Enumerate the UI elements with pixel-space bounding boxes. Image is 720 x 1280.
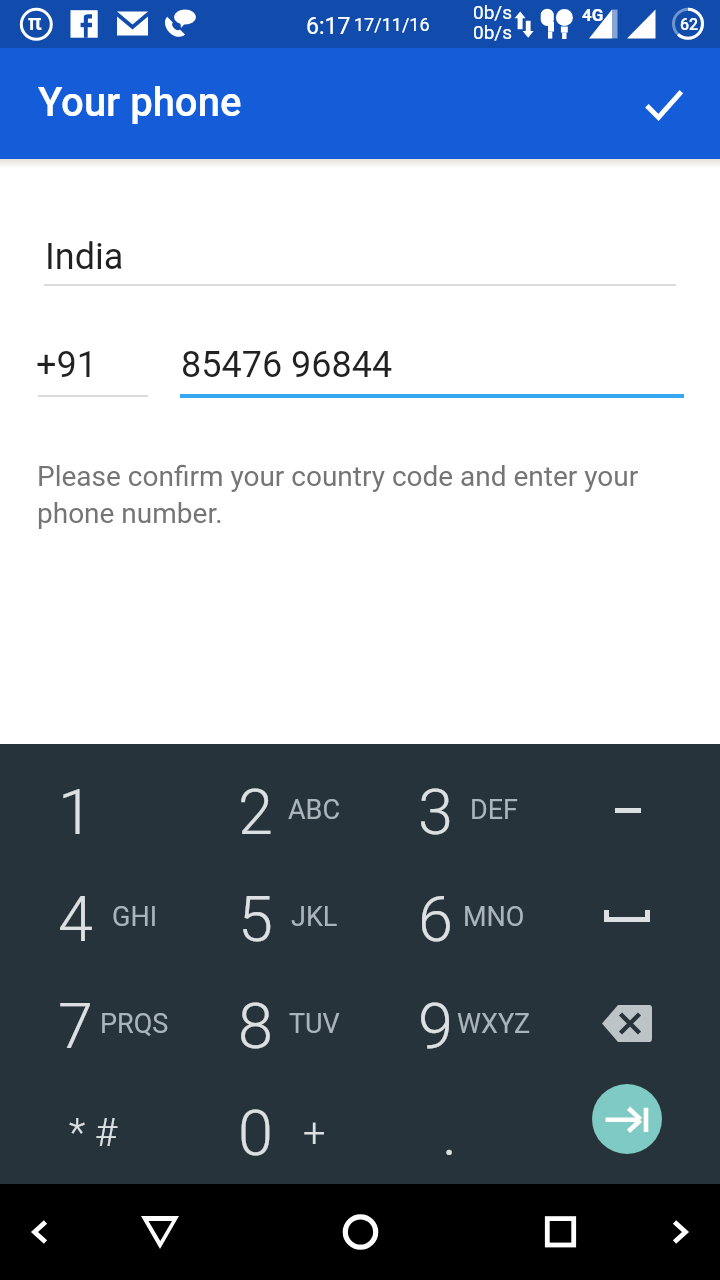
staticText: 85476 96844 xyxy=(181,344,393,386)
staticText: 4G xyxy=(582,5,604,25)
button[interactable]: Backspace xyxy=(540,973,720,1080)
button[interactable]: 8 xyxy=(180,973,360,1080)
staticText: +91 xyxy=(36,344,97,386)
button[interactable]: Space xyxy=(540,866,720,973)
staticText: 1 xyxy=(58,776,93,850)
button[interactable]: 6 xyxy=(360,866,540,973)
button[interactable]: Previous xyxy=(0,1184,100,1280)
staticText: Please confirm your country code and ent… xyxy=(37,460,657,530)
staticText: ABC xyxy=(288,794,341,826)
staticText: 5 xyxy=(238,883,273,957)
staticText: Your phone xyxy=(38,79,242,126)
staticText: 17/11/16 xyxy=(354,14,430,35)
staticText: 0 xyxy=(238,1097,273,1171)
button[interactable]: 9 xyxy=(360,973,540,1080)
button[interactable]: Home xyxy=(260,1184,460,1280)
staticText: + xyxy=(303,1110,326,1157)
staticText: PRQS xyxy=(100,1008,169,1040)
staticText: 6:17 xyxy=(306,13,351,40)
staticText: 3 xyxy=(418,776,453,850)
button[interactable]: 1 xyxy=(0,759,180,866)
staticText: 0b/s 0b/s xyxy=(473,1,512,43)
staticText: MNO xyxy=(463,901,525,933)
staticText: . xyxy=(442,1097,458,1171)
button[interactable]: 5 xyxy=(180,866,360,973)
staticText: India xyxy=(45,236,124,278)
button[interactable]: 4 xyxy=(0,866,180,973)
button[interactable]: 7 xyxy=(0,973,180,1080)
staticText: GHI xyxy=(112,901,157,933)
staticText: # xyxy=(95,1111,118,1156)
button[interactable]: * xyxy=(0,1080,180,1187)
staticText: 2 xyxy=(238,776,273,850)
button[interactable]: Next xyxy=(592,1084,662,1154)
button[interactable]: 0 xyxy=(180,1080,360,1187)
staticText: π xyxy=(28,10,42,36)
staticText: * xyxy=(69,1111,86,1156)
button[interactable]: Confirm xyxy=(634,74,694,134)
button[interactable]: . xyxy=(360,1080,540,1187)
button[interactable]: 3 xyxy=(360,759,540,866)
button[interactable]: Dash xyxy=(540,759,720,866)
staticText: 7 xyxy=(58,990,93,1064)
staticText: 6 xyxy=(418,883,453,957)
button[interactable]: 2 xyxy=(180,759,360,866)
button[interactable]: Next xyxy=(620,1184,720,1280)
staticText: TUV xyxy=(289,1008,340,1040)
button[interactable]: Back xyxy=(100,1184,260,1280)
staticText: WXYZ xyxy=(457,1008,531,1040)
staticText: 9 xyxy=(418,990,453,1064)
staticText: JKL xyxy=(291,901,338,933)
staticText: 4 xyxy=(58,883,93,957)
staticText: DEF xyxy=(470,794,518,826)
staticText: 8 xyxy=(238,990,273,1064)
staticText: 62 xyxy=(680,15,699,34)
button[interactable]: Recents xyxy=(460,1184,620,1280)
